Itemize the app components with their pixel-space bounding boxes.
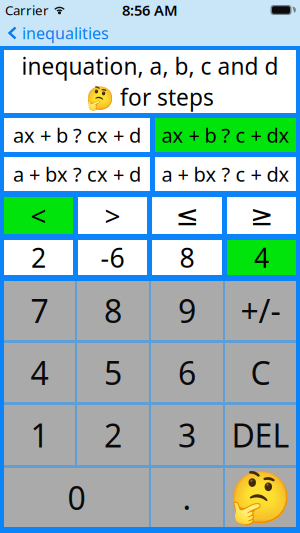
button[interactable]: 8: [152, 240, 222, 275]
staticText: DEL: [231, 414, 289, 456]
staticText: 4: [254, 240, 269, 275]
staticText: 1: [30, 414, 48, 456]
button[interactable]: 4: [227, 240, 296, 275]
staticText: inequation, a, b, c and d: [21, 51, 278, 81]
staticText: ≤: [175, 200, 198, 231]
button[interactable]: +/-: [225, 281, 296, 340]
staticText: ax + b ? cx + d: [13, 122, 141, 148]
staticText: a + bx ? cx + d: [13, 161, 141, 187]
staticText: ≥: [250, 200, 273, 231]
staticText: inequalities: [22, 22, 109, 44]
button[interactable]: 1: [4, 405, 75, 465]
staticText: -6: [100, 240, 124, 275]
staticText: 5: [104, 351, 122, 394]
staticText: 2: [104, 414, 122, 456]
staticText: Carrier: [5, 1, 49, 19]
staticText: 8:56 AM: [122, 0, 178, 20]
button[interactable]: C: [225, 343, 296, 402]
staticText: 2: [31, 240, 46, 275]
button[interactable]: 2: [77, 405, 149, 465]
button[interactable]: 4: [4, 343, 75, 402]
staticText: <: [30, 197, 46, 234]
staticText: 8: [104, 289, 122, 332]
staticText: a + bx ? c + dx: [161, 161, 289, 187]
staticText: 3: [178, 414, 196, 456]
button[interactable]: .: [151, 468, 223, 527]
button[interactable]: ≥: [227, 197, 296, 234]
button[interactable]: -6: [78, 240, 147, 275]
staticText: >: [104, 197, 120, 234]
staticText: 8: [179, 240, 194, 275]
button[interactable]: <: [4, 197, 73, 234]
button[interactable]: ax + b ? cx + d: [4, 118, 150, 152]
button[interactable]: a + bx ? c + dx: [155, 157, 296, 191]
staticText: 6: [178, 351, 196, 394]
button[interactable]: 0: [4, 468, 149, 527]
button[interactable]: >: [78, 197, 147, 234]
staticText: 0: [67, 476, 85, 519]
staticText: +/-: [240, 289, 280, 332]
button[interactable]: Show steps: [225, 468, 296, 527]
staticText: 4: [30, 351, 48, 394]
button[interactable]: 7: [4, 281, 75, 340]
button[interactable]: 5: [77, 343, 149, 402]
button[interactable]: a + bx ? cx + d: [4, 157, 150, 191]
button[interactable]: ≤: [152, 197, 222, 234]
staticText: 9: [178, 289, 196, 332]
button[interactable]: 2: [4, 240, 73, 275]
staticText: C: [250, 351, 270, 394]
button[interactable]: 3: [151, 405, 223, 465]
button[interactable]: DEL: [225, 405, 296, 465]
button[interactable]: 8: [77, 281, 149, 340]
button[interactable]: ax + b ? c + dx: [155, 118, 296, 152]
button[interactable]: 6: [151, 343, 223, 402]
staticText: 🤔: [229, 469, 292, 526]
button[interactable]: Back: [0, 22, 109, 44]
staticText: 7: [30, 289, 48, 332]
button[interactable]: 9: [151, 281, 223, 340]
staticText: ax + b ? c + dx: [161, 122, 289, 148]
staticText: .: [182, 476, 191, 519]
staticText: 🤔 for steps: [86, 82, 214, 112]
